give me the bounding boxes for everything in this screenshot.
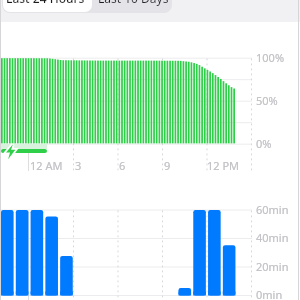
staticText: 100%	[256, 50, 285, 65]
staticText: 3	[75, 158, 82, 173]
staticText: 0%	[256, 136, 272, 151]
staticText: 9	[164, 158, 171, 173]
button[interactable]: Charging	[3, 143, 18, 160]
staticText: 40min	[256, 230, 289, 245]
staticText: 6	[119, 158, 126, 173]
button[interactable]	[3, 0, 92, 12]
staticText: Last 24 Hours	[6, 0, 85, 6]
staticText: 12 AM	[30, 158, 63, 173]
staticText: 12 PM	[207, 158, 240, 173]
staticText: 60min	[256, 202, 289, 217]
staticText: 0min	[256, 287, 283, 300]
button[interactable]	[92, 0, 172, 13]
staticText: 50%	[256, 93, 278, 108]
staticText: 20min	[256, 259, 289, 274]
staticText: Last 10 Days	[98, 0, 169, 6]
